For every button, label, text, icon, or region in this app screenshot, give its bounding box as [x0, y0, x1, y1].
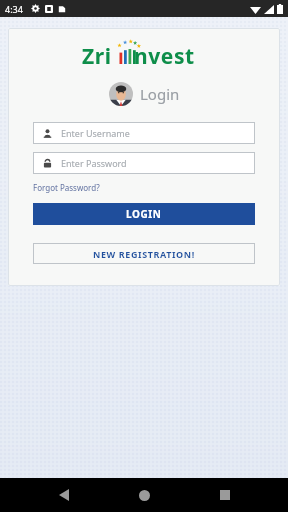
button[interactable]: LOGIN [33, 203, 255, 225]
staticText: Forgot Password? [33, 182, 100, 193]
button[interactable]: Forgot Password? [33, 180, 100, 195]
button[interactable]: Back [47, 478, 81, 512]
button[interactable]: Home [127, 478, 161, 512]
staticText: nvest [134, 42, 195, 71]
staticText: Login [140, 84, 180, 104]
button[interactable]: Enter Password [33, 152, 255, 174]
staticText: 4:34 [5, 3, 23, 15]
staticText: Zri [82, 42, 112, 71]
staticText: NEW REGISTRATION! [93, 248, 195, 260]
button[interactable]: Enter Username [33, 122, 255, 144]
staticText: LOGIN [126, 207, 162, 221]
button[interactable]: NEW REGISTRATION! [33, 243, 255, 264]
staticText: Enter Password [61, 157, 127, 169]
button[interactable]: Recent apps [208, 478, 242, 512]
staticText: Enter Username [61, 127, 130, 139]
